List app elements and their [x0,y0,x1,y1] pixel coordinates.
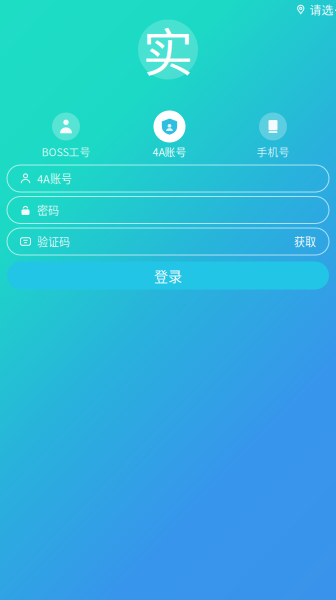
button[interactable]: 手机号 [237,110,309,157]
staticText: 4A账号 [37,174,72,183]
staticText: 请选择城市 [309,4,336,15]
button[interactable]: 登录 [7,261,329,289]
staticText: 实 [142,22,193,77]
staticText: 登录 [154,269,182,282]
button[interactable]: BOSS工号 [30,110,102,157]
button[interactable]: 4A账号 [133,110,205,157]
staticText: 手机号 [256,147,289,156]
staticText: 4A账号 [152,147,186,156]
staticText: 获取 [294,237,316,246]
button[interactable]: 获取 [284,230,329,253]
staticText: 验证码 [37,237,70,246]
button[interactable]: 请选择城市 [278,4,336,15]
staticText: BOSS工号 [41,147,90,156]
staticText: 密码 [37,205,59,215]
